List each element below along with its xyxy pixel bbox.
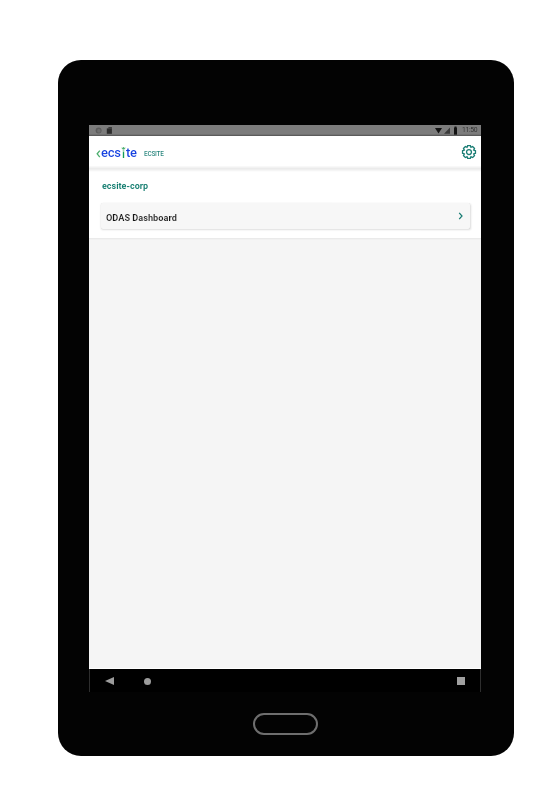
button[interactable]: ODAS Dashboard	[101, 203, 470, 229]
button[interactable]: Home	[136, 670, 158, 692]
staticText: 11:50	[462, 126, 478, 134]
staticText: ecs	[101, 145, 121, 160]
button[interactable]: Back	[98, 670, 120, 692]
button[interactable]: Home button	[253, 713, 318, 735]
staticText: ECSITE	[144, 150, 164, 158]
button[interactable]: Settings	[458, 141, 480, 163]
button[interactable]: Recent apps	[450, 670, 472, 692]
staticText: ODAS Dashboard	[106, 212, 177, 223]
staticText: te	[126, 145, 137, 160]
button[interactable]: Back to ecsite home	[94, 141, 139, 164]
staticText: ecsite-corp	[102, 181, 149, 192]
